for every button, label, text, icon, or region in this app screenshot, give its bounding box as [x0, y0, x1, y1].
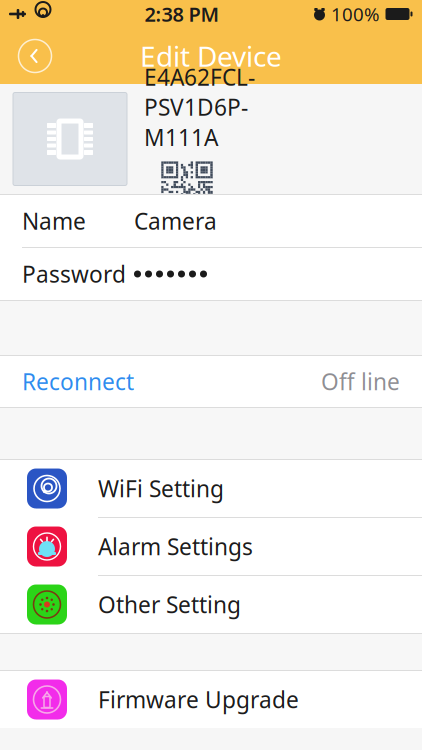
- button[interactable]: Other Setting: [0, 576, 422, 633]
- staticText: 100%: [331, 2, 380, 26]
- staticText: Other Setting: [98, 589, 241, 619]
- staticText: Firmware Upgrade: [98, 684, 299, 714]
- button[interactable]: WiFi Setting: [0, 460, 422, 518]
- button[interactable]: Name: [0, 195, 422, 247]
- staticText: E4A62FCLPSV1D6PM111A: [144, 62, 255, 152]
- staticText: WiFi Setting: [98, 473, 224, 503]
- staticText: Alarm Settings: [98, 531, 253, 561]
- staticText: Off line: [321, 366, 400, 396]
- staticText: Name: [22, 206, 86, 236]
- button[interactable]: Back: [13, 34, 57, 78]
- button[interactable]: Reconnect: [0, 356, 422, 407]
- staticText: 2:38 PM: [144, 1, 219, 27]
- button[interactable]: Firmware Upgrade: [0, 671, 422, 728]
- button[interactable]: Alarm Settings: [0, 518, 422, 576]
- staticText: Password: [22, 259, 126, 289]
- staticText: Camera: [134, 206, 217, 236]
- staticText: Edit Device: [140, 37, 282, 75]
- staticText: Reconnect: [22, 366, 134, 396]
- button[interactable]: Password: [0, 248, 422, 300]
